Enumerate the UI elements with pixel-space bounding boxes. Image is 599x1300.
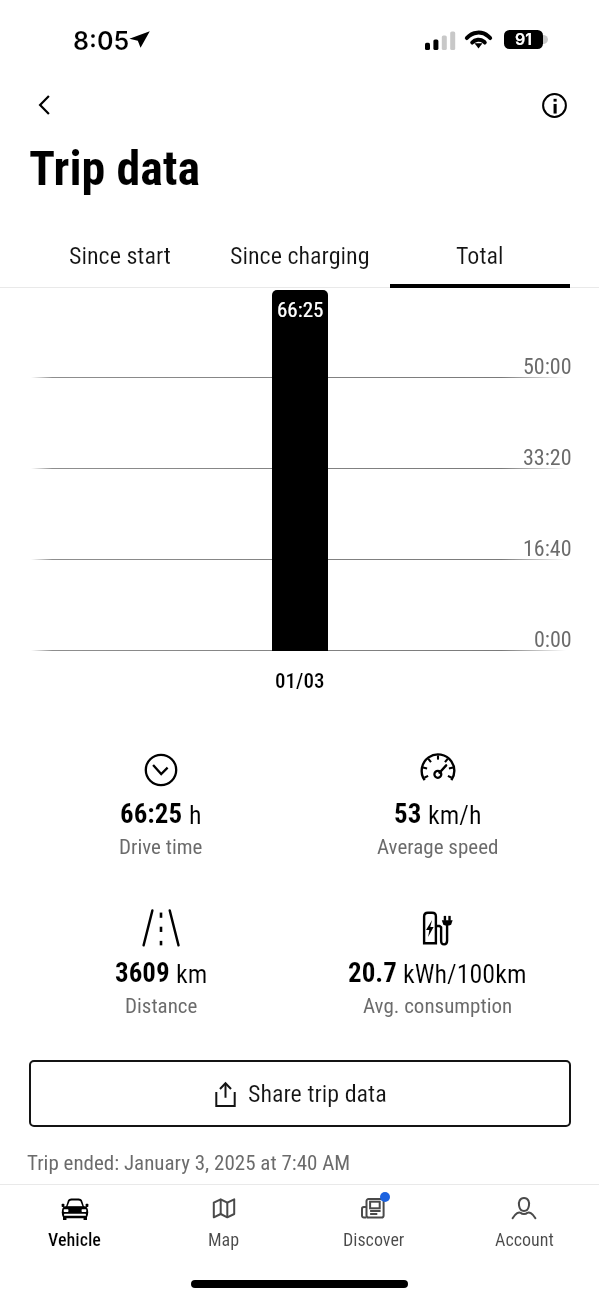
staticText: 0:00	[534, 627, 572, 653]
staticText: 91	[515, 30, 532, 48]
staticText: 53	[394, 798, 422, 830]
staticText: km/h	[422, 800, 482, 830]
staticText: Since start	[69, 242, 171, 270]
button[interactable]: Since charging	[210, 242, 390, 288]
staticText: 66:25	[277, 298, 324, 323]
staticText: Share trip data	[248, 1080, 387, 1108]
button[interactable]: Information	[532, 83, 576, 127]
staticText: 33:20	[523, 445, 572, 471]
button[interactable]: Total drive time 66:25	[272, 290, 328, 651]
staticText: Drive time	[119, 835, 203, 860]
staticText: 20.7	[348, 957, 397, 989]
button[interactable]: Discover	[299, 1185, 449, 1250]
button[interactable]: Vehicle	[0, 1185, 149, 1250]
staticText: 16:40	[523, 536, 572, 562]
staticText: Account	[495, 1229, 554, 1250]
button[interactable]: Account	[449, 1185, 599, 1250]
staticText: Average speed	[377, 835, 499, 860]
button[interactable]: Total	[390, 242, 570, 288]
staticText: 8:05	[73, 26, 130, 56]
staticText: Trip data	[29, 140, 201, 196]
button[interactable]: Share trip data	[29, 1060, 571, 1127]
staticText: Trip ended: January 3, 2025 at 7:40 AM	[27, 1151, 351, 1176]
staticText: 01/03	[275, 669, 325, 694]
staticText: h	[183, 800, 202, 830]
staticText: Distance	[125, 994, 198, 1019]
staticText: Map	[208, 1229, 240, 1250]
staticText: km	[170, 959, 208, 989]
staticText: Since charging	[230, 242, 370, 270]
button[interactable]: 53	[299, 751, 576, 860]
staticText: Discover	[343, 1229, 405, 1250]
staticText: Total	[456, 242, 504, 270]
staticText: Avg. consumption	[363, 994, 513, 1019]
button[interactable]: 66:25	[23, 751, 299, 860]
button[interactable]: Since start	[29, 242, 210, 288]
button[interactable]: Back	[22, 83, 66, 127]
staticText: 66:25	[120, 798, 183, 830]
staticText: 50:00	[523, 354, 572, 380]
staticText: kWh/100km	[397, 959, 527, 989]
button[interactable]: 3609	[23, 910, 299, 1019]
button[interactable]: 20.7	[299, 910, 576, 1019]
staticText: Vehicle	[48, 1229, 101, 1250]
button[interactable]: Map	[149, 1185, 299, 1250]
staticText: 3609	[115, 957, 170, 989]
